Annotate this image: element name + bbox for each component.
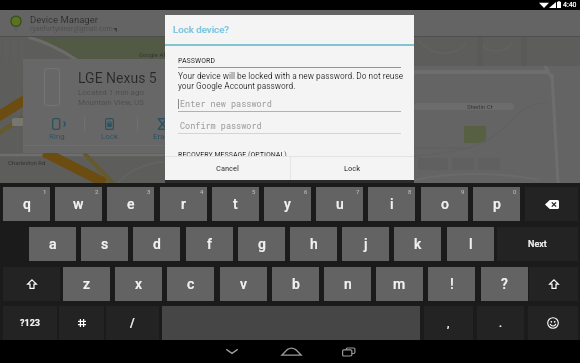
staticText: 3 [147,188,151,195]
button[interactable]: h [290,227,337,261]
button[interactable]: d [133,227,180,261]
staticText: b [292,276,300,292]
button[interactable]: s [81,227,128,261]
staticText: Lock device? [173,24,230,35]
button[interactable]: i [368,187,415,221]
button[interactable]: x [115,267,162,301]
button[interactable]: Next [497,227,578,261]
staticText: k [414,236,422,252]
staticText: l [469,236,473,252]
staticText: 8 [408,188,412,195]
staticText: Device Manager [30,14,98,25]
button[interactable]: Emoji [528,306,578,340]
button[interactable]: j [342,227,389,261]
staticText: PASSWORD [178,57,216,65]
staticText: i [390,196,394,212]
button[interactable]: m [376,267,423,301]
staticText: Charleston Rd [8,159,46,166]
staticText: h [310,236,318,252]
button[interactable]: a [29,227,76,261]
button[interactable]: Lock [291,157,414,180]
button[interactable]: . [477,306,524,340]
button[interactable]: Erase [136,116,189,144]
button[interactable]: k [394,227,441,261]
button[interactable]: y [264,187,311,221]
button[interactable]: b [272,267,319,301]
staticText: r [181,196,186,212]
staticText: j [364,236,368,252]
staticText: f [207,236,212,252]
staticText: Located 1 min ago [78,88,145,97]
button[interactable]: n [324,267,371,301]
button[interactable]: Back [208,340,256,363]
staticText: Enter new password [180,98,272,109]
staticText: 1 [43,188,47,195]
button[interactable]: t [212,187,259,221]
staticText: u [336,196,344,212]
button[interactable]: e [107,187,154,221]
staticText: 9 [461,188,465,195]
staticText: Sherlin Ct [467,103,493,110]
button[interactable]: z [63,267,110,301]
button[interactable]: r [160,187,207,221]
staticText: 2 [95,188,99,195]
button[interactable]: o [421,187,468,221]
staticText: 7 [356,188,360,195]
staticText: Erase [153,132,173,141]
staticText: m [393,276,406,292]
staticText: w [73,196,84,212]
button[interactable]: f [186,227,233,261]
button[interactable]: Recent apps [325,340,373,363]
staticText: z [83,276,91,292]
staticText: Mountain View, US [78,98,144,107]
button[interactable]: ! [428,267,475,301]
staticText: q [23,196,31,212]
button[interactable]: Ring [31,116,83,144]
button[interactable]: Shift [3,267,60,301]
button[interactable]: / [106,306,159,340]
staticText: Google Aff [139,51,168,58]
button[interactable]: q [3,187,50,221]
staticText: s [101,236,109,252]
staticText: LGE Nexus 5 [78,70,157,86]
staticText: ! [450,276,454,292]
button[interactable]: Shift [529,267,578,301]
staticText: . [499,317,503,330]
staticText: a [49,236,57,252]
staticText: RECOVERY MESSAGE (OPTIONAL) [178,151,287,156]
button[interactable]: , [424,306,473,340]
staticText: Ring [49,132,65,141]
button[interactable]: Cancel [165,157,290,180]
staticText: ryanfortyniner@gmail.com [30,25,113,33]
button[interactable]: Input languages [59,306,104,340]
button[interactable]: Home [267,340,315,363]
staticText: , [447,317,450,330]
button[interactable]: p [473,187,520,221]
staticText: t [233,196,238,212]
staticText: 5 [252,188,256,195]
button[interactable]: g [238,227,285,261]
button[interactable]: Backspace [525,187,578,221]
staticText: d [153,236,161,252]
staticText: ? [501,276,508,292]
staticText: Confirm password [180,120,262,131]
button[interactable]: ? [481,267,528,301]
staticText: 6 [304,188,308,195]
staticText: v [240,276,247,292]
staticText: c [187,276,195,292]
staticText: y [284,196,291,212]
staticText: 4:40 [563,1,577,9]
button[interactable]: c [167,267,214,301]
staticText: o [441,196,449,212]
button[interactable]: l [447,227,494,261]
button[interactable]: w [55,187,102,221]
button[interactable]: Lock [83,116,136,144]
button[interactable]: u [316,187,363,221]
staticText: x [135,276,143,292]
staticText: 0 [513,188,517,195]
button[interactable]: v [220,267,267,301]
staticText: Cancel [216,164,239,173]
staticText: g [258,236,266,252]
button[interactable]: ?123 [3,306,57,340]
